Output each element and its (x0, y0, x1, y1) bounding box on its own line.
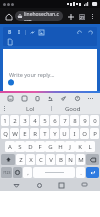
staticText: J (69, 143, 71, 151)
button[interactable]: Bold (5, 28, 14, 37)
button[interactable]: . (76, 167, 85, 178)
button[interactable]: Tabs (76, 11, 87, 22)
button[interactable]: Insert image (37, 28, 46, 37)
button[interactable]: Space (33, 167, 75, 178)
button[interactable]: 7 (60, 115, 69, 126)
staticText: 21 (80, 15, 85, 20)
button[interactable]: 9 (80, 115, 89, 126)
staticText: 6 (53, 117, 57, 125)
staticText: K (78, 143, 82, 151)
button[interactable]: Y (50, 128, 59, 139)
button[interactable]: X (26, 154, 35, 165)
button[interactable]: G (45, 141, 55, 152)
button[interactable]: Redo (86, 28, 95, 37)
button[interactable]: Backspace (86, 154, 99, 165)
button[interactable]: More (85, 93, 95, 103)
button[interactable]: Lol (9, 103, 51, 114)
button[interactable]: Stickers (19, 93, 29, 103)
staticText: S (18, 143, 22, 151)
staticText: W (12, 130, 18, 138)
staticText: L (88, 143, 92, 151)
button[interactable]: D (25, 141, 35, 152)
button[interactable]: C (36, 154, 45, 165)
button[interactable]: Emoji (13, 167, 22, 178)
button[interactable]: L (85, 141, 95, 152)
button[interactable]: T (40, 128, 49, 139)
staticText: N (68, 156, 73, 164)
staticText: linehosechan.com (24, 11, 60, 21)
button[interactable]: Good (52, 103, 94, 114)
button[interactable]: More options (87, 11, 97, 21)
button[interactable]: Attach file (5, 37, 14, 46)
button[interactable]: 0 (90, 115, 99, 126)
button[interactable]: 5 (40, 115, 49, 126)
button[interactable]: Voice input (0, 103, 9, 114)
button[interactable]: R (30, 128, 39, 139)
button[interactable]: Back (10, 179, 22, 191)
button[interactable]: U (60, 128, 69, 139)
button[interactable]: Home (3, 11, 14, 22)
button[interactable]: Enter (86, 167, 99, 178)
button[interactable]: Symbols (1, 167, 12, 178)
staticText: 9 (83, 117, 87, 125)
button[interactable]: Shift (1, 154, 15, 165)
staticText: F (38, 143, 42, 151)
staticText: Q (3, 130, 8, 138)
button[interactable]: B (56, 154, 65, 165)
button[interactable]: I (70, 128, 79, 139)
button[interactable]: Clipboard (32, 93, 42, 103)
staticText: H (58, 143, 63, 151)
button[interactable]: F (35, 141, 45, 152)
staticText: I (73, 130, 76, 138)
button[interactable]: Keyboard modes (5, 93, 15, 103)
button[interactable]: P (90, 128, 99, 139)
button[interactable]: Home (33, 179, 45, 191)
button[interactable]: V (46, 154, 55, 165)
button[interactable]: A (5, 141, 15, 152)
button[interactable]: Undo (75, 28, 84, 37)
button[interactable]: H (55, 141, 65, 152)
button[interactable]: GIF (45, 93, 55, 103)
button[interactable]: 1 (1, 115, 9, 126)
button[interactable]: Italic (14, 28, 23, 37)
staticText: Y (53, 130, 57, 138)
staticText: . (80, 169, 82, 177)
button[interactable]: W (10, 128, 19, 139)
button[interactable]: Hide keyboard (78, 179, 90, 191)
staticText: V (49, 156, 53, 164)
button[interactable]: Recent apps (55, 179, 67, 191)
staticText: U (62, 130, 67, 138)
button[interactable]: 3 (20, 115, 29, 126)
button[interactable]: Write your reply... (3, 49, 97, 91)
staticText: Lol (26, 105, 35, 113)
button[interactable]: 8 (70, 115, 79, 126)
button[interactable]: , (23, 167, 32, 178)
button[interactable]: linehosechan.com (15, 11, 63, 21)
button[interactable]: M (76, 154, 85, 165)
staticText: P (93, 130, 97, 138)
button[interactable]: New tab (65, 11, 76, 22)
staticText: D (28, 143, 33, 151)
staticText: O (82, 130, 87, 138)
button[interactable]: N (66, 154, 75, 165)
button[interactable]: 6 (50, 115, 59, 126)
button[interactable]: 4 (30, 115, 39, 126)
button[interactable]: E (20, 128, 29, 139)
button[interactable]: Recent (72, 93, 82, 103)
staticText: B (59, 156, 63, 164)
button[interactable]: Link (28, 28, 37, 37)
button[interactable]: J (65, 141, 75, 152)
button[interactable]: K (75, 141, 85, 152)
button[interactable]: O (80, 128, 89, 139)
staticText: R (33, 130, 37, 138)
button[interactable]: Q (1, 128, 9, 139)
button[interactable]: Translate (58, 93, 68, 103)
staticText: 0 (93, 117, 97, 125)
button[interactable]: S (15, 141, 25, 152)
button[interactable]: Z (16, 154, 25, 165)
staticText: G (48, 143, 53, 151)
staticText: Z (19, 156, 23, 164)
staticText: A (8, 143, 12, 151)
button[interactable]: 2 (10, 115, 19, 126)
staticText: 3 (23, 117, 27, 125)
